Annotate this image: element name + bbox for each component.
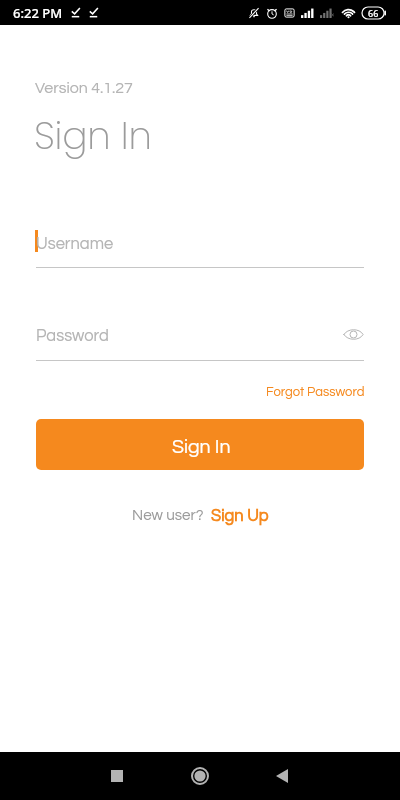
staticText: Forgot Password [266,385,365,398]
staticText: Sign In [172,437,231,457]
staticText: Password [36,327,109,344]
staticText: Username [36,235,114,252]
button[interactable]: Username [36,232,364,272]
button[interactable]: Show password [343,324,364,345]
button[interactable]: Forgot Password [266,380,365,402]
staticText: Sign In [34,110,152,163]
button[interactable]: Sign Up [211,507,269,524]
button[interactable]: Back [258,752,306,800]
staticText: New user? [132,508,204,524]
button[interactable]: Password [36,326,364,366]
button[interactable]: Home [176,752,224,800]
button[interactable]: Recent apps [93,752,141,800]
staticText: 6:22 PM [13,4,63,22]
staticText: 66 [368,7,379,19]
staticText: Version 4.1.27 [35,80,133,96]
button[interactable]: Sign In [36,419,364,470]
